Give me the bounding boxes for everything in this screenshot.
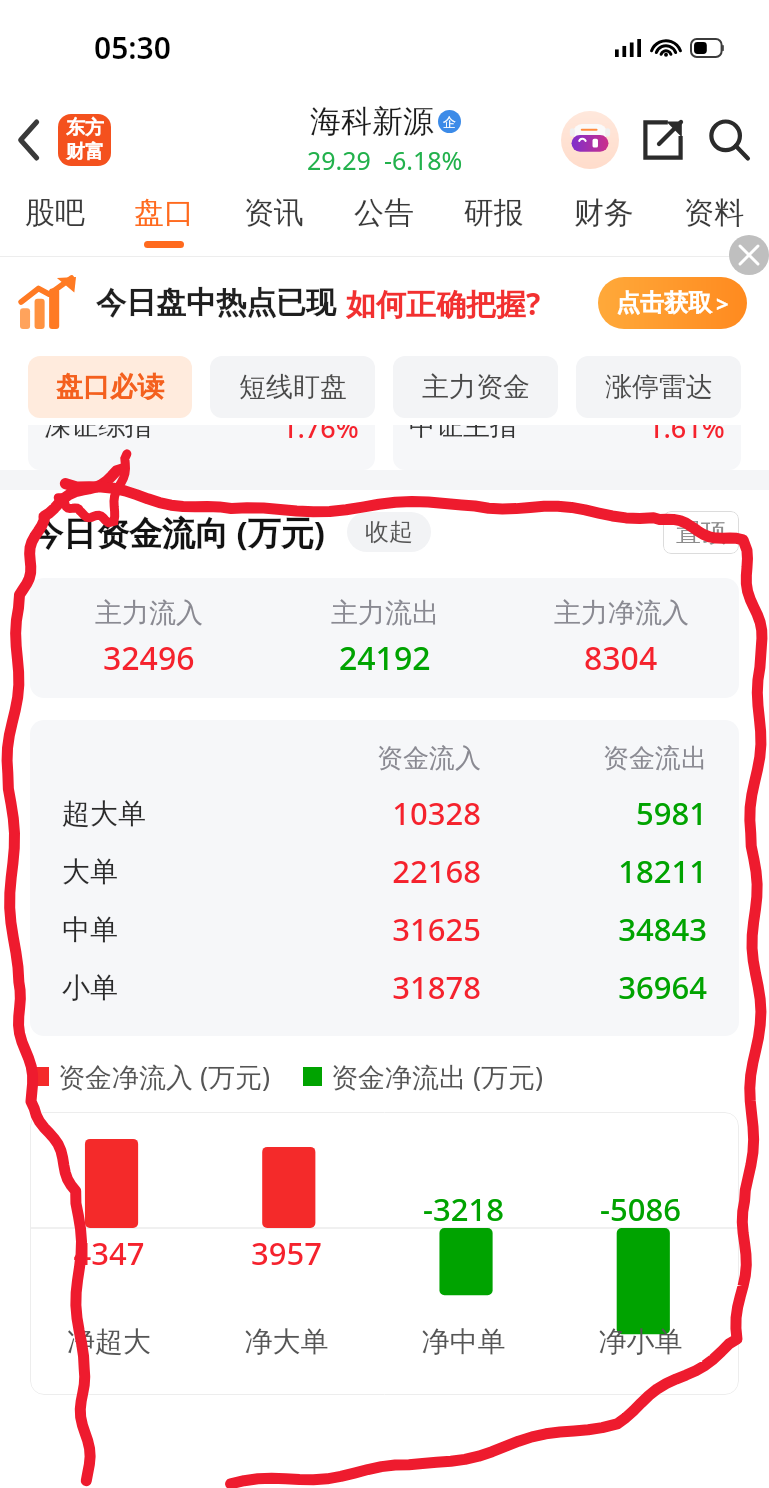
- staticText: 24192: [339, 636, 431, 680]
- staticText: 中单: [62, 912, 118, 947]
- button[interactable]: AI assistant: [561, 111, 619, 169]
- staticText: 公告: [354, 194, 414, 232]
- button[interactable]: 盘口: [109, 185, 219, 257]
- staticText: 主力资金: [422, 370, 530, 404]
- button[interactable]: 中证主指: [393, 425, 741, 470]
- button[interactable]: 今日盘中热点已现: [20, 257, 747, 349]
- staticText: 东方: [66, 116, 104, 140]
- staticText: 短线盯盘: [239, 370, 347, 404]
- staticText: 中证主指: [409, 425, 517, 443]
- staticText: 资金净流入 (万元): [58, 1058, 271, 1095]
- staticText: 股吧: [25, 194, 85, 232]
- staticText: 18211: [497, 850, 707, 892]
- button[interactable]: Search: [703, 114, 755, 166]
- button[interactable]: 深证综指: [28, 425, 375, 470]
- staticText: 资讯: [244, 194, 304, 232]
- staticText: 31625: [271, 908, 481, 950]
- staticText: 收起: [365, 517, 413, 547]
- staticText: 8304: [584, 636, 658, 680]
- staticText: 置顶: [676, 517, 726, 548]
- button[interactable]: 盘口必读: [28, 356, 192, 418]
- staticText: -5086: [552, 1188, 729, 1230]
- button[interactable]: East Money: [58, 114, 111, 166]
- button[interactable]: 研报: [439, 185, 549, 257]
- staticText: 超大单: [62, 796, 146, 831]
- staticText: 今日资金流向 (万元): [30, 510, 325, 555]
- button[interactable]: 置顶: [663, 511, 739, 554]
- button[interactable]: 短线盯盘: [210, 356, 375, 418]
- staticText: 5981: [497, 792, 707, 834]
- staticText: 05:30: [94, 27, 171, 68]
- staticText: 盘口: [134, 194, 194, 232]
- staticText: 点击获取: [616, 288, 712, 318]
- button[interactable]: 主力资金: [393, 356, 558, 418]
- staticText: 净大单: [198, 1324, 375, 1359]
- button[interactable]: 财务: [549, 185, 659, 257]
- button[interactable]: 点击获取: [598, 277, 747, 329]
- staticText: 大单: [62, 854, 118, 889]
- button[interactable]: 资讯: [219, 185, 329, 257]
- staticText: -3218: [375, 1188, 552, 1230]
- button[interactable]: 资料: [659, 185, 769, 257]
- staticText: 资料: [684, 194, 744, 232]
- staticText: 小单: [62, 970, 118, 1005]
- staticText: 净小单: [552, 1324, 729, 1359]
- staticText: 10328: [271, 792, 481, 834]
- button[interactable]: 股吧: [0, 185, 109, 257]
- staticText: 31878: [271, 966, 481, 1008]
- staticText: 净超大: [30, 1324, 198, 1359]
- staticText: 主力净流入: [554, 596, 689, 630]
- staticText: >: [716, 288, 729, 318]
- staticText: 36964: [497, 966, 707, 1008]
- staticText: 资金流出: [497, 742, 707, 775]
- button[interactable]: 收起: [347, 512, 431, 552]
- staticText: 主力流入: [95, 596, 203, 630]
- staticText: 企: [443, 114, 456, 130]
- staticText: 如何正确把握?: [346, 283, 541, 324]
- staticText: 研报: [464, 194, 524, 232]
- staticText: 32496: [103, 636, 195, 680]
- staticText: 1.61%: [648, 425, 725, 446]
- staticText: 深证综指: [44, 425, 152, 443]
- staticText: 22168: [271, 850, 481, 892]
- staticText: 主力流出: [331, 596, 439, 630]
- staticText: 财富: [66, 140, 104, 164]
- button[interactable]: Share: [637, 114, 689, 166]
- button[interactable]: 公告: [329, 185, 439, 257]
- staticText: 盘口必读: [56, 370, 164, 404]
- staticText: 34843: [497, 908, 707, 950]
- button[interactable]: Close: [729, 235, 769, 275]
- staticText: 29.29 -6.18%: [307, 143, 463, 177]
- button[interactable]: Back: [8, 116, 50, 164]
- staticText: 净中单: [375, 1324, 552, 1359]
- staticText: 涨停雷达: [605, 370, 713, 404]
- staticText: 4347: [30, 1232, 198, 1274]
- staticText: 3957: [198, 1232, 375, 1274]
- staticText: 资金流入: [271, 742, 481, 775]
- staticText: 今日盘中热点已现: [96, 284, 336, 322]
- staticText: 海科新源: [310, 102, 434, 141]
- button[interactable]: 涨停雷达: [576, 356, 741, 418]
- staticText: 资金净流出 (万元): [331, 1058, 544, 1095]
- staticText: 1.76%: [282, 425, 359, 446]
- staticText: 财务: [574, 194, 634, 232]
